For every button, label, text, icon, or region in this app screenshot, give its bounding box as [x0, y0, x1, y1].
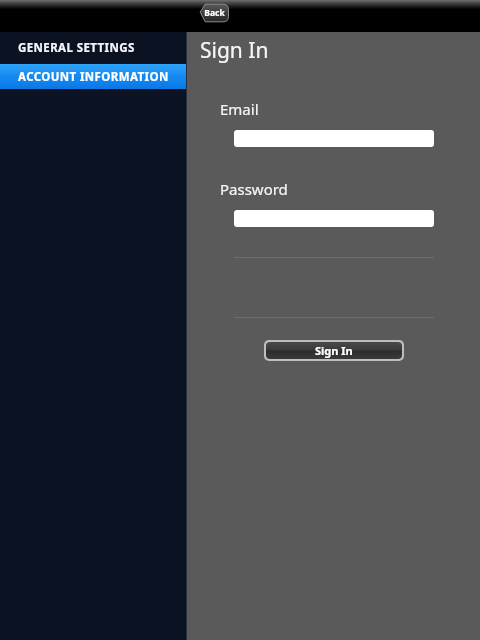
staticText: Sign In [200, 36, 269, 65]
button[interactable] [234, 210, 434, 227]
button[interactable]: GENERAL SETTINGS [0, 32, 187, 64]
staticText: Back [204, 7, 225, 19]
staticText: ACCOUNT INFORMATION [18, 69, 169, 85]
button[interactable]: Sign In [266, 342, 402, 359]
staticText: Password [220, 179, 288, 199]
button[interactable]: Back [193, 3, 229, 23]
button[interactable]: ACCOUNT INFORMATION [0, 64, 187, 89]
staticText: Email [220, 99, 259, 119]
staticText: Sign In [315, 343, 353, 358]
staticText: GENERAL SETTINGS [18, 40, 135, 56]
button[interactable] [234, 130, 434, 147]
